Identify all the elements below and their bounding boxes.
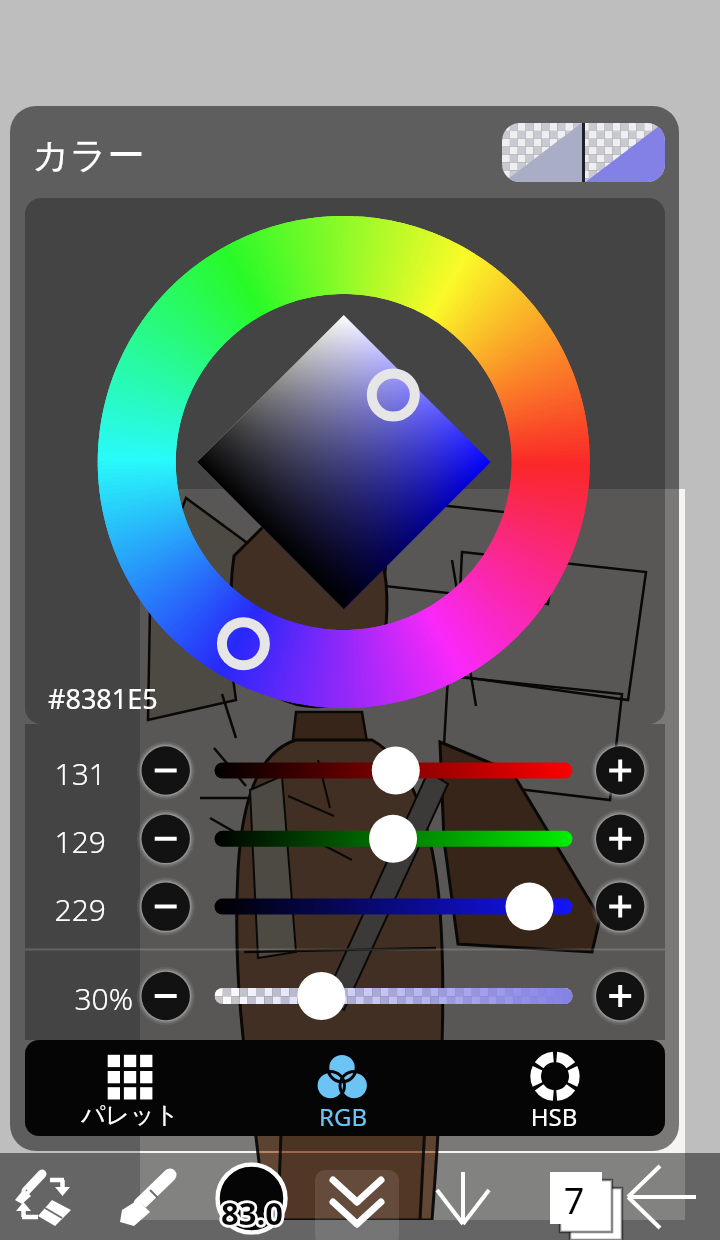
staticText: #8381E5 xyxy=(48,680,158,717)
staticText: RGB xyxy=(223,1100,463,1138)
staticText: 229 xyxy=(0,889,106,937)
staticText: 7 xyxy=(454,1176,694,1234)
staticText: 30% xyxy=(0,978,133,1026)
staticText: 83.0 xyxy=(132,1192,372,1240)
staticText: 83.0 xyxy=(132,1192,372,1240)
staticText: 131 xyxy=(0,753,106,801)
staticText: カラー xyxy=(32,132,145,179)
staticText: HSB xyxy=(434,1100,674,1138)
staticText: パレット xyxy=(10,1100,250,1138)
staticText: 129 xyxy=(0,821,106,869)
